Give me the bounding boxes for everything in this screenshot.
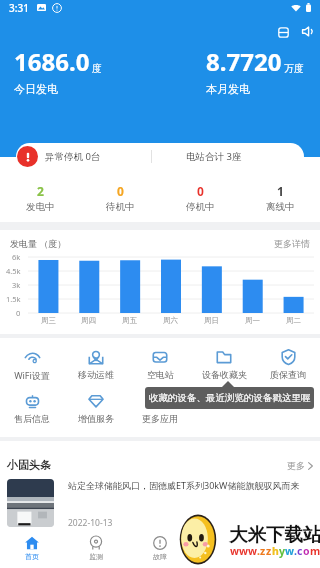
staticText: 发电中 [26, 201, 55, 213]
staticText: z [260, 544, 266, 558]
button[interactable]: 更多 [287, 460, 313, 471]
button[interactable]: 1 [240, 183, 320, 213]
staticText: 设备收藏夹 [202, 369, 247, 380]
button[interactable]: 站定全球储能风口，固德威ET系列30kW储能旗舰驭风而来 [7, 479, 316, 529]
staticText: 周日 [204, 316, 219, 325]
staticText: 4.5k [6, 266, 21, 276]
button[interactable]: 我的 [256, 530, 320, 568]
staticText: w [285, 544, 294, 558]
button[interactable]: 0 [160, 183, 240, 213]
staticText: z [266, 544, 272, 558]
staticText: 待机中 [106, 201, 135, 213]
button[interactable]: 收藏的设备、最近浏览的设备戳这里喔 [145, 387, 314, 409]
staticText: 周六 [163, 316, 178, 325]
staticText: 更多详情 [274, 238, 310, 249]
staticText: 更多应用 [142, 413, 178, 424]
staticText: 1686.0 [14, 45, 90, 78]
staticText: 停机中 [186, 201, 215, 213]
staticText: 首页 [25, 552, 39, 561]
button[interactable]: 质保查询 [256, 348, 320, 380]
staticText: 收藏的设备、最近浏览的设备戳这里喔 [149, 392, 311, 404]
staticText: 周三 [41, 316, 56, 325]
button[interactable]: WiFi设置 [0, 348, 64, 381]
button[interactable]: 2 [0, 183, 80, 213]
staticText: 3k [12, 280, 21, 290]
staticText: 3:31 [9, 1, 29, 15]
staticText: 质保查询 [270, 369, 306, 380]
staticText: 移动运维 [78, 369, 114, 380]
staticText: w [239, 544, 248, 558]
staticText: 0 [197, 183, 204, 199]
button[interactable]: 增值服务 [64, 392, 128, 424]
staticText: 0 [117, 183, 124, 199]
staticText: 离线中 [266, 201, 295, 213]
staticText: 1.5k [6, 294, 21, 304]
staticText: 站定全球储能风口，固德威ET系列30kW储能旗舰驭风而来 [68, 479, 300, 491]
staticText: 度 [92, 62, 102, 75]
staticText: 大米下载站 [229, 523, 320, 546]
staticText: 万度 [284, 62, 304, 75]
staticText: 0 [16, 308, 21, 318]
staticText: 异常停机 0台 [45, 150, 101, 163]
staticText: 周五 [122, 316, 137, 325]
button[interactable]: 故障 [128, 530, 192, 568]
button[interactable]: 0 [80, 183, 160, 213]
button[interactable]: 首页 [0, 530, 64, 568]
button[interactable]: Station list [271, 20, 296, 45]
staticText: o [303, 544, 310, 558]
staticText: 周二 [286, 316, 301, 325]
staticText: 8.7720 [206, 45, 282, 78]
staticText: 我的 [281, 552, 295, 561]
button[interactable]: 消息 [192, 530, 256, 568]
staticText: 售后信息 [14, 413, 50, 424]
staticText: h [272, 544, 279, 558]
staticText: 小固头条 [7, 458, 51, 472]
staticText: . [294, 544, 297, 558]
staticText: 监测 [89, 552, 103, 561]
button[interactable]: 监测 [64, 530, 128, 568]
button[interactable]: 更多应用 [128, 392, 192, 424]
staticText: 2 [37, 183, 44, 199]
staticText: . [257, 544, 260, 558]
button[interactable]: Announcement [295, 19, 320, 44]
button[interactable]: 设备收藏夹 [192, 348, 256, 380]
staticText: 2022-10-13 [68, 517, 113, 529]
staticText: 本月发电 [206, 82, 250, 96]
staticText: 6k [12, 252, 21, 262]
staticText: c [297, 544, 303, 558]
staticText: w [248, 544, 257, 558]
button[interactable]: 移动运维 [64, 348, 128, 380]
staticText: 发电量 （度） [10, 237, 67, 249]
staticText: 今日发电 [14, 82, 58, 96]
staticText: 故障 [153, 552, 167, 561]
button[interactable]: 售后信息 [0, 392, 64, 424]
staticText: 周四 [81, 316, 96, 325]
staticText: m [310, 544, 320, 558]
button[interactable]: 空电站 [128, 348, 192, 380]
staticText: 周一 [245, 316, 260, 325]
staticText: 电站合计 3座 [186, 150, 242, 163]
button[interactable]: 更多详情 [274, 238, 310, 249]
staticText: 1 [277, 183, 284, 199]
staticText: 增值服务 [78, 413, 114, 424]
staticText: WiFi设置 [14, 369, 50, 381]
staticText: w [230, 544, 239, 558]
staticText: 空电站 [147, 369, 174, 380]
staticText: 更多 [287, 460, 305, 471]
button[interactable]: 异常停机 0台 [16, 143, 304, 170]
staticText: y [279, 544, 285, 558]
